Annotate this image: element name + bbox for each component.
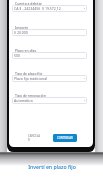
button[interactable]: 500 (12, 52, 87, 59)
staticText: Plazo fijo tradicional (14, 76, 48, 81)
button[interactable]: Invertí en plazo fijo (0, 161, 103, 172)
staticText: CONTINUAR (57, 136, 73, 140)
staticText: Importe (15, 25, 29, 30)
button[interactable]: CANCELAR (28, 134, 41, 142)
staticText: Tipo de renovación (15, 93, 46, 98)
button[interactable]: Automático (12, 97, 87, 104)
staticText: Automático (14, 98, 33, 103)
button[interactable]: CONTINUAR (53, 134, 77, 142)
button[interactable]: $ 20.000 (12, 29, 87, 36)
staticText: Plazo en días (15, 48, 37, 53)
staticText: CANCELAR (28, 134, 41, 142)
staticText: 500 (14, 53, 21, 58)
button[interactable]: CA $ ..24234456 $ 19.572,12 (12, 5, 87, 12)
staticText: Tipo de plazo fijo (15, 71, 43, 76)
staticText: $ 20.000 (14, 30, 28, 35)
staticText: CA $ ..24234456 $ 19.572,12 (14, 6, 61, 11)
staticText: Cuenta a debitar (15, 1, 43, 6)
staticText: Invertí en plazo fijo (28, 163, 76, 170)
button[interactable]: Plazo fijo tradicional (12, 75, 87, 82)
